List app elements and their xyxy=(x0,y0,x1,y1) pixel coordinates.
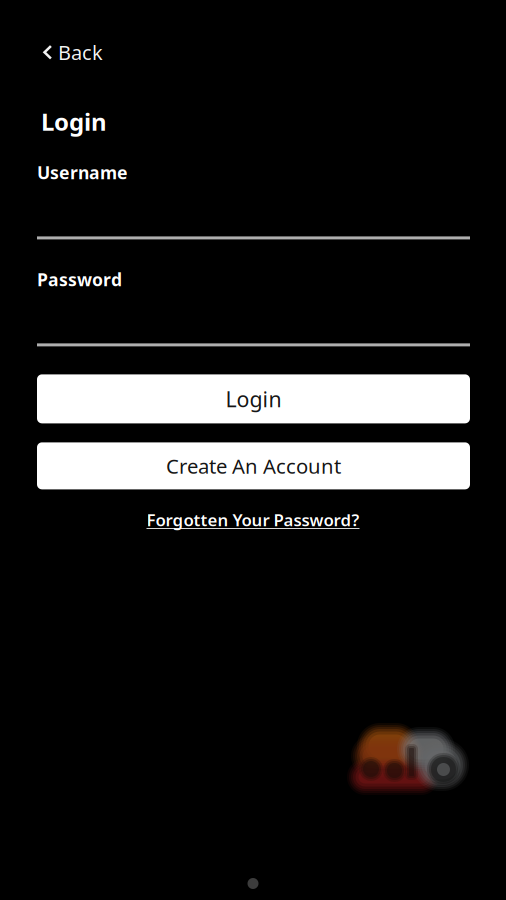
button[interactable]: Login xyxy=(37,374,470,423)
button[interactable]: Back xyxy=(0,0,119,78)
button[interactable]: Password xyxy=(0,239,506,346)
staticText: Username xyxy=(37,160,128,184)
button[interactable]: Forgotten Your Password? xyxy=(0,501,506,538)
button[interactable]: Username xyxy=(0,137,506,239)
staticText: Password xyxy=(37,267,122,291)
staticText: Login xyxy=(225,385,281,413)
staticText: Back xyxy=(58,39,103,66)
button[interactable]: Create An Account xyxy=(37,442,470,489)
staticText: Create An Account xyxy=(166,452,341,480)
staticText: Login xyxy=(41,106,107,137)
staticText: Forgotten Your Password? xyxy=(146,508,359,531)
